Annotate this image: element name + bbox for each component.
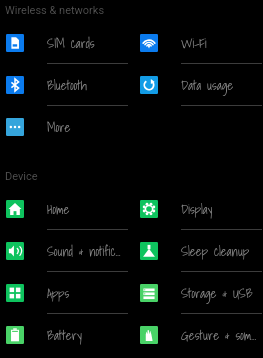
staticText: Gesture & somatosensory <box>181 325 259 346</box>
staticText: More <box>47 117 125 138</box>
staticText: SIM cards <box>47 33 125 54</box>
staticText: Device <box>5 170 38 183</box>
staticText: Battery <box>47 325 125 346</box>
button[interactable]: Apps <box>0 272 134 314</box>
button[interactable]: Data usage <box>134 64 263 106</box>
staticText: Storage & USB <box>181 283 259 304</box>
button[interactable]: Display <box>134 188 263 230</box>
staticText: Apps <box>47 283 125 304</box>
staticText: Wireless & networks <box>5 4 105 17</box>
button[interactable]: Sleep cleanup <box>134 230 263 272</box>
button[interactable]: Sound & notification <box>0 230 134 272</box>
button[interactable]: Bluetooth <box>0 64 134 106</box>
staticText: Display <box>181 199 259 220</box>
staticText: Wi-Fi <box>181 33 259 54</box>
staticText: Bluetooth <box>47 75 125 96</box>
button[interactable]: Wi-Fi <box>134 22 263 64</box>
button[interactable]: Gesture & somatosensory <box>134 314 263 356</box>
button[interactable]: Storage & USB <box>134 272 263 314</box>
staticText: Home <box>47 199 125 220</box>
staticText: Sleep cleanup <box>181 241 259 262</box>
button[interactable]: Home <box>0 188 134 230</box>
staticText: Data usage <box>181 75 259 96</box>
button[interactable]: Battery <box>0 314 134 356</box>
staticText: Sound & notification <box>47 241 125 262</box>
button[interactable]: SIM cards <box>0 22 134 64</box>
button[interactable]: More <box>0 106 134 148</box>
